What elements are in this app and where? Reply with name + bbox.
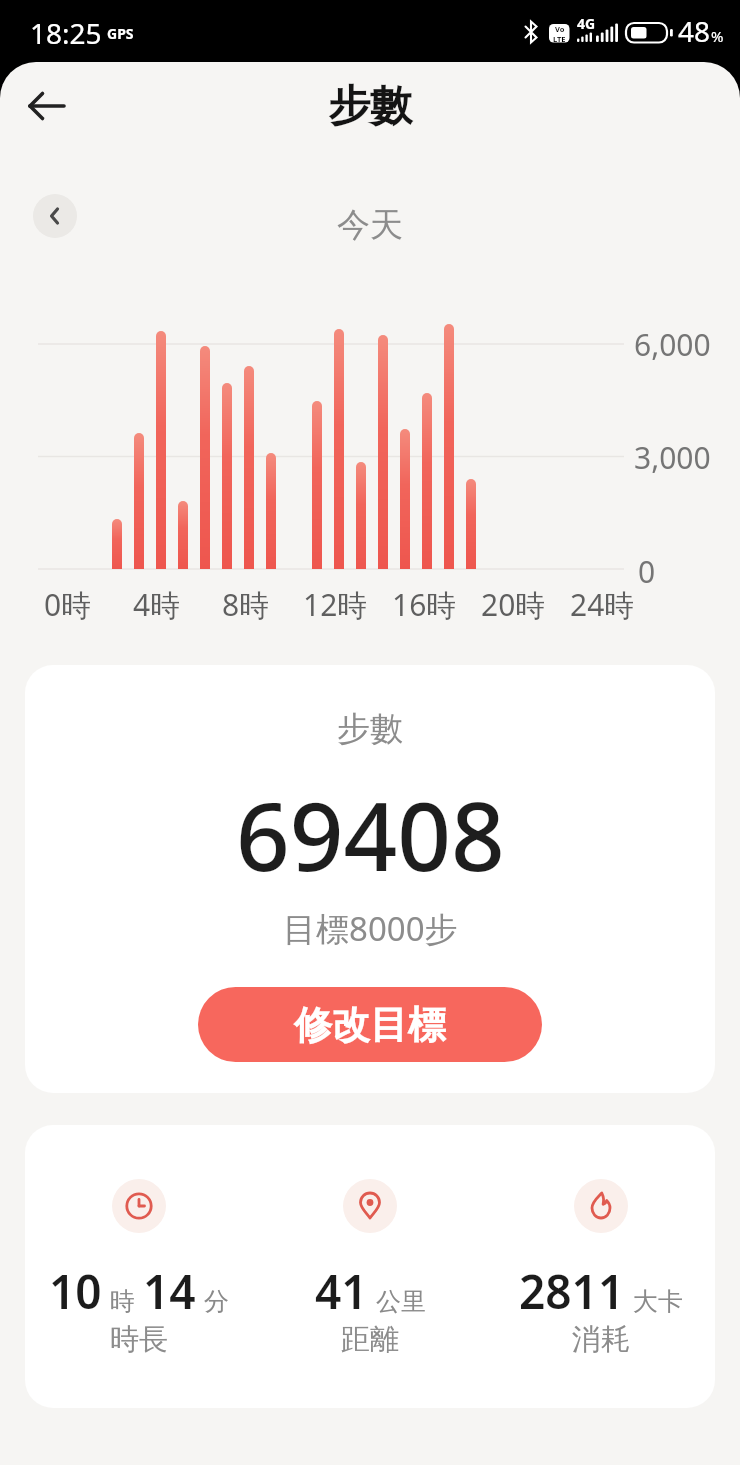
staticText: 16時 xyxy=(392,584,457,625)
staticText: 2811 xyxy=(519,1260,625,1323)
staticText: 41 xyxy=(315,1260,368,1323)
staticText: Vo xyxy=(555,24,565,34)
staticText: 14 xyxy=(143,1260,196,1323)
staticText: % xyxy=(711,26,724,46)
staticText: 大卡 xyxy=(633,1286,683,1317)
staticText: 4時 xyxy=(133,584,181,625)
button[interactable]: 修改目標 xyxy=(198,987,542,1062)
staticText: 今天 xyxy=(337,204,403,246)
staticText: 20時 xyxy=(481,584,546,625)
staticText: 時長 xyxy=(110,1321,168,1358)
staticText: 0時 xyxy=(44,584,92,625)
staticText: 公里 xyxy=(376,1286,426,1317)
staticText: 分 xyxy=(204,1286,229,1317)
staticText: 10 xyxy=(49,1260,102,1323)
staticText: 距離 xyxy=(341,1321,399,1358)
staticText: 修改目標 xyxy=(294,1001,446,1049)
button[interactable] xyxy=(33,194,77,238)
staticText: 12時 xyxy=(303,584,368,625)
staticText: 8時 xyxy=(222,584,270,625)
staticText: 6,000 xyxy=(634,324,711,365)
staticText: 步數 xyxy=(328,80,412,133)
staticText: 18:25 xyxy=(30,14,102,52)
staticText: 69408 xyxy=(236,771,505,899)
staticText: 步數 xyxy=(337,708,403,750)
staticText: 48 xyxy=(678,12,711,50)
staticText: 目標8000步 xyxy=(283,906,458,951)
staticText: 24時 xyxy=(570,584,635,625)
button[interactable] xyxy=(24,84,68,128)
staticText: 0 xyxy=(638,551,656,592)
staticText: 時 xyxy=(110,1286,135,1317)
staticText: 3,000 xyxy=(634,437,711,478)
staticText: GPS xyxy=(107,24,134,43)
staticText: 4G xyxy=(577,14,596,30)
staticText: 消耗 xyxy=(572,1321,630,1358)
staticText: LTE xyxy=(553,34,566,43)
